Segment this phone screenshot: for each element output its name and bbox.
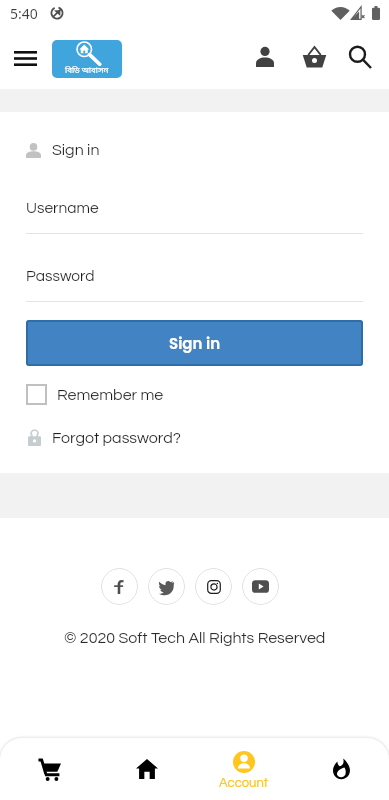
button[interactable]: Menu bbox=[4, 37, 47, 80]
button[interactable]: Instagram bbox=[195, 568, 232, 605]
staticText: বিডি আবাসন bbox=[65, 66, 109, 77]
button[interactable]: Trending bbox=[292, 738, 389, 800]
button[interactable]: Home bbox=[98, 738, 195, 800]
button[interactable]: Account bbox=[245, 38, 287, 80]
button[interactable]: Cart bbox=[295, 38, 337, 80]
button[interactable]: Sign in bbox=[26, 142, 100, 158]
button[interactable]: Search bbox=[341, 38, 383, 80]
button[interactable]: BD Abason home bbox=[52, 40, 122, 78]
button[interactable]: Remember me bbox=[26, 384, 164, 405]
staticText: Remember me bbox=[57, 387, 164, 403]
button[interactable]: Cart bbox=[0, 738, 98, 800]
staticText: © 2020 Soft Tech All Rights Reserved bbox=[64, 630, 326, 646]
staticText: Username bbox=[26, 200, 99, 216]
button[interactable]: Twitter bbox=[148, 568, 185, 605]
staticText: Account bbox=[219, 776, 268, 789]
staticText: Sign in bbox=[52, 142, 100, 158]
staticText: Password bbox=[26, 268, 95, 284]
button[interactable]: Facebook bbox=[101, 568, 138, 605]
staticText: Forgot password? bbox=[52, 430, 181, 446]
button[interactable]: Forgot password? bbox=[28, 429, 181, 446]
staticText: Sign in bbox=[169, 333, 221, 354]
button[interactable]: YouTube bbox=[242, 568, 279, 605]
staticText: 5:40 bbox=[10, 4, 38, 23]
button[interactable]: Sign in bbox=[26, 320, 363, 366]
button[interactable]: Account bbox=[195, 738, 292, 800]
